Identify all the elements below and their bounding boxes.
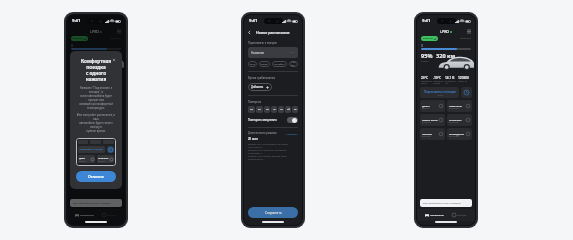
staticText: Двери	[422, 104, 430, 107]
button[interactable]: Отлично	[76, 171, 116, 182]
staticText: Отлично	[88, 174, 104, 179]
button[interactable]: Повторять ежедневно	[248, 117, 298, 123]
staticText: Сб	[287, 108, 290, 111]
button[interactable]: Включён	[73, 37, 86, 40]
button[interactable]: Вечер	[261, 61, 268, 67]
staticText: Пн	[250, 108, 254, 111]
staticText: Включён	[73, 37, 83, 40]
button[interactable]: Подготовить к поездке	[70, 87, 109, 98]
button[interactable]: Добавить	[251, 83, 269, 91]
staticText: Напряжение АКБ	[445, 80, 456, 84]
button[interactable]: Закрыть	[112, 58, 116, 62]
staticText: Обновлено	[460, 37, 471, 40]
staticText: Закрыты	[422, 107, 430, 109]
staticText: 320 км	[436, 52, 456, 60]
button[interactable]: Двери	[422, 100, 443, 112]
staticText: Вт	[258, 108, 261, 111]
button[interactable]: Пт	[278, 106, 284, 113]
staticText: Двери	[79, 157, 85, 160]
staticText: Подготовить к поездке	[74, 90, 106, 94]
button[interactable]: Расписание	[461, 87, 472, 98]
staticText: Подготовить к поездке	[424, 90, 456, 94]
button[interactable]: Двери	[72, 100, 93, 112]
button[interactable]: Зарядка	[452, 213, 467, 217]
staticText: Добавить	[251, 85, 264, 89]
button[interactable]: Зажигание	[99, 100, 120, 112]
button[interactable]: Зажигание	[449, 100, 470, 112]
staticText: Закрыты	[98, 160, 105, 162]
button[interactable]: Сб	[285, 106, 291, 113]
staticText: Вс	[294, 108, 297, 111]
button[interactable]: Пн	[248, 106, 255, 113]
button[interactable]: Зарядка	[102, 213, 117, 217]
staticText: Управление	[430, 214, 444, 217]
button[interactable]: На работу	[274, 61, 285, 67]
staticText: Повторять ежедневно	[248, 118, 287, 122]
staticText: Ваш автомобиль готов к поездке!	[423, 202, 461, 205]
staticText: 0/16	[290, 51, 295, 54]
button[interactable]: Ср	[264, 106, 270, 113]
button[interactable]: Отопитель	[449, 114, 470, 126]
button[interactable]: Назад	[248, 31, 251, 34]
staticText: Прогрев	[422, 132, 432, 135]
staticText: 14.1 В	[445, 76, 455, 80]
button[interactable]: Охлаждение	[99, 128, 120, 140]
staticText: Выключен	[422, 135, 432, 137]
staticText: Выключено	[99, 107, 110, 109]
staticText: Время срабатывания	[248, 76, 275, 80]
button[interactable]: Охлаждение	[449, 128, 470, 140]
staticText: -10°C	[83, 76, 92, 80]
button[interactable]: Сохранить	[248, 207, 298, 218]
staticText: Утро	[250, 63, 255, 66]
staticText: Зажигание	[449, 104, 462, 107]
button[interactable]: Изменить	[286, 132, 298, 135]
staticText: Выключен	[449, 121, 459, 123]
staticText: -10°C	[433, 76, 442, 80]
staticText: Обновлено	[110, 37, 121, 40]
button[interactable]: Включён	[423, 37, 436, 40]
staticText: Отопитель	[449, 118, 462, 121]
staticText: Выключено	[449, 107, 460, 109]
button[interactable]: Название	[251, 47, 295, 58]
button[interactable]: Вт	[256, 106, 263, 113]
button[interactable]: Отопитель	[99, 114, 120, 126]
staticText: Ваш автомобиль готов к поездке!	[73, 202, 111, 205]
staticText: Выключен	[422, 121, 432, 123]
button[interactable]: Прогрев	[422, 128, 443, 140]
staticText: Подготовить к поездке	[80, 148, 103, 151]
staticText: Зажигание	[98, 157, 109, 160]
staticText: Температура снаружи	[433, 80, 444, 84]
staticText: Вечер	[261, 63, 268, 66]
button[interactable]: С работы	[291, 61, 296, 67]
button[interactable]: Режим Ready	[422, 114, 443, 126]
button[interactable]: Управление	[75, 213, 94, 217]
staticText: На работу	[274, 63, 285, 66]
staticText: i-PRO	[90, 29, 99, 34]
staticText: Повторять	[248, 100, 262, 104]
button[interactable]: Меню	[467, 30, 471, 33]
staticText: Выключен	[72, 121, 82, 123]
staticText: 20 мин	[437, 94, 443, 96]
button[interactable]: Чт	[271, 106, 277, 113]
button[interactable]: Подготовить к поездке	[420, 87, 459, 98]
button[interactable]: Управление	[425, 213, 444, 217]
button[interactable]: Вс	[292, 106, 298, 113]
staticText: Пробег, км	[458, 80, 467, 82]
staticText: Управление	[80, 214, 94, 217]
staticText: 23°C	[421, 76, 429, 80]
staticText: Режим Ready	[422, 118, 438, 121]
staticText: 20 мин	[248, 137, 258, 141]
button[interactable]: Прогрев	[72, 128, 93, 140]
button[interactable]: Режим Ready	[72, 114, 93, 126]
button[interactable]: Расписание	[111, 87, 122, 98]
button[interactable]: Утро	[250, 61, 255, 67]
button[interactable]: Меню	[117, 30, 121, 33]
staticText: i-PRO	[440, 29, 449, 34]
staticText: Чт	[273, 108, 276, 111]
